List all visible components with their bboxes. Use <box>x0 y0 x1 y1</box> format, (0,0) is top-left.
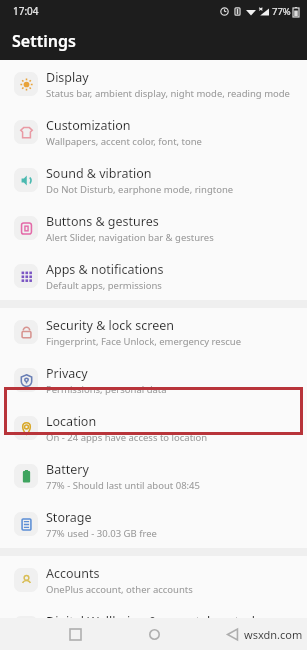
staticText: Apps & notifications <box>46 261 164 278</box>
staticText: 77% <box>272 5 291 18</box>
staticText: Status bar, ambient display, night mode,… <box>46 87 290 100</box>
staticText: Security & lock screen <box>46 317 175 334</box>
staticText: Permissions, personal data <box>46 383 167 396</box>
button[interactable]: Security & lock screen <box>0 308 307 356</box>
button[interactable]: Apps & notifications <box>0 252 307 300</box>
staticText: Sound & vibration <box>46 165 152 182</box>
staticText: Default apps, permissions <box>46 279 162 292</box>
staticText: OnePlus account, other accounts <box>46 583 193 596</box>
staticText: Battery <box>46 461 89 478</box>
button[interactable]: Buttons & gestures <box>0 204 307 252</box>
button[interactable]: Back <box>217 619 247 649</box>
staticText: Customization <box>46 117 131 134</box>
staticText: Location <box>46 413 97 430</box>
button[interactable]: Home <box>139 619 169 649</box>
button[interactable]: Accounts <box>0 556 307 604</box>
button[interactable]: Sound & vibration <box>0 156 307 204</box>
staticText: Fingerprint, Face Unlock, emergency resc… <box>46 335 242 348</box>
staticText: Alert Slider, navigation bar & gestures <box>46 231 214 244</box>
button[interactable]: Storage <box>0 500 307 548</box>
staticText: Settings <box>12 30 76 52</box>
button[interactable]: Digital Wellbeing & parental controls <box>0 604 307 650</box>
staticText: Wallpapers, accent color, font, tone <box>46 135 202 148</box>
staticText: Privacy <box>46 365 88 382</box>
button[interactable]: Battery <box>0 452 307 500</box>
staticText: Accounts <box>46 565 100 582</box>
staticText: Do Not Disturb, earphone mode, ringtone <box>46 183 234 196</box>
button[interactable]: Location <box>0 404 307 452</box>
button[interactable]: Recent apps <box>60 619 90 649</box>
staticText: 17:04 <box>13 4 39 18</box>
staticText: 77% used - 30.03 GB free <box>46 527 157 540</box>
staticText: On - 24 apps have access to location <box>46 431 208 444</box>
staticText: Storage <box>46 509 92 526</box>
button[interactable]: Privacy <box>0 356 307 404</box>
staticText: wsxdn.com <box>244 627 303 642</box>
staticText: Digital Wellbeing & parental controls <box>46 613 262 630</box>
staticText: Display <box>46 69 89 86</box>
button[interactable]: Customization <box>0 108 307 156</box>
staticText: 77% - Should last until about 08:45 <box>46 479 200 492</box>
button[interactable]: Display <box>0 60 307 108</box>
staticText: Screen time, app timers, bedtime mode <box>46 631 223 644</box>
staticText: Buttons & gestures <box>46 213 159 230</box>
